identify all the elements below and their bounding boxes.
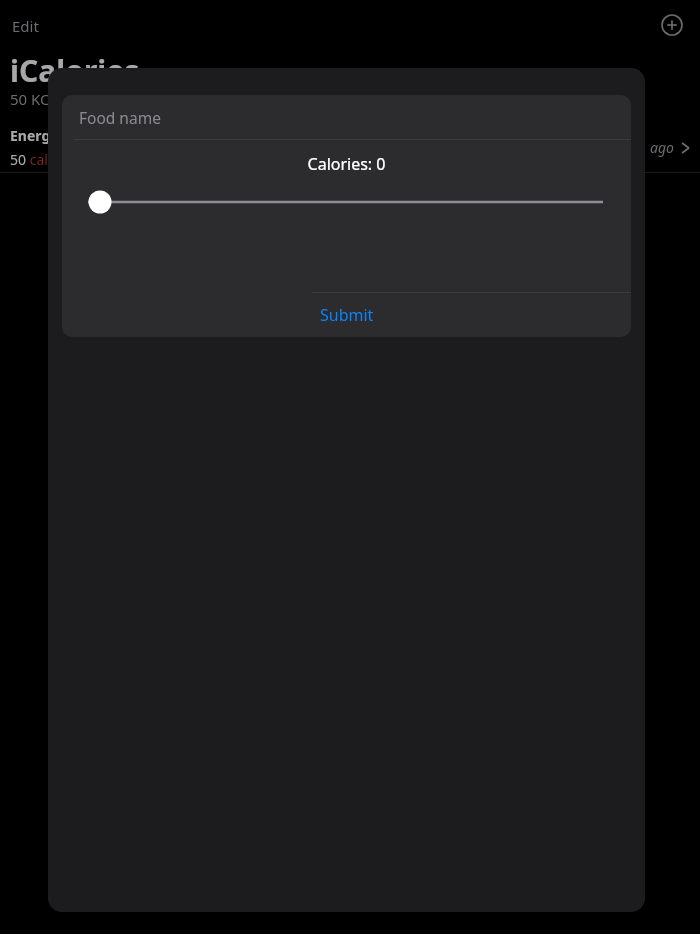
button[interactable]: Energy (0, 122, 700, 172)
button[interactable]: Edit (12, 16, 39, 36)
button[interactable]: Add entry (658, 11, 686, 39)
staticText: Food name (79, 107, 161, 128)
staticText: 50 calories (10, 150, 81, 169)
staticText: Calories: 0 (62, 153, 631, 175)
staticText: Edit (12, 16, 39, 36)
button[interactable]: Calories slider (62, 187, 631, 217)
staticText: Energy (10, 126, 59, 145)
staticText: ago (650, 138, 674, 157)
staticText: 50 KCal today (10, 89, 106, 109)
staticText: iCalories (10, 50, 140, 91)
button[interactable]: Food name (62, 95, 631, 139)
staticText: Submit (320, 304, 374, 326)
button[interactable]: Submit (62, 293, 631, 337)
